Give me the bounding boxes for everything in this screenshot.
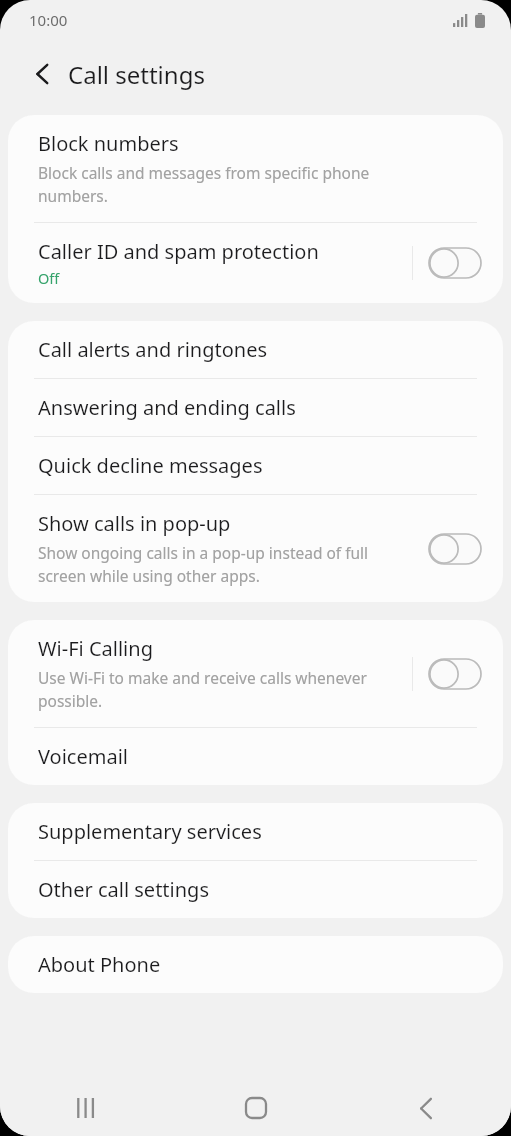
staticText: Answering and ending calls — [38, 394, 296, 421]
staticText: Use Wi-Fi to make and receive calls when… — [38, 667, 367, 712]
button[interactable]: Show calls in pop-up — [8, 495, 503, 602]
staticText: Quick decline messages — [38, 452, 263, 479]
staticText: Off — [38, 268, 60, 288]
button[interactable]: Quick decline messages — [8, 437, 503, 494]
staticText: Wi-Fi Calling — [38, 635, 153, 662]
staticText: Show calls in pop-up — [38, 510, 231, 537]
button[interactable]: Home — [171, 1080, 341, 1136]
staticText: Caller ID and spam protection — [38, 238, 319, 265]
staticText: Other call settings — [38, 876, 209, 903]
staticText: Supplementary services — [38, 818, 262, 845]
button[interactable]: Call alerts and ringtones — [8, 321, 503, 378]
staticText: Block calls and messages from specific p… — [38, 162, 370, 207]
button[interactable]: About Phone — [8, 936, 503, 993]
button[interactable]: Block numbers — [8, 115, 503, 222]
staticText: Block numbers — [38, 130, 179, 157]
button[interactable]: Wi-Fi Calling — [8, 620, 503, 727]
button[interactable]: Navigate up — [24, 56, 60, 92]
staticText: About Phone — [38, 951, 161, 978]
button[interactable]: Other call settings — [8, 861, 503, 918]
button[interactable]: Answering and ending calls — [8, 379, 503, 436]
button[interactable]: Toggle setting — [429, 248, 481, 278]
staticText: Call alerts and ringtones — [38, 336, 267, 363]
button[interactable]: Voicemail — [8, 728, 503, 785]
staticText: Voicemail — [38, 743, 128, 770]
button[interactable]: Supplementary services — [8, 803, 503, 860]
button[interactable]: Caller ID and spam protection — [8, 223, 503, 303]
staticText: Show ongoing calls in a pop-up instead o… — [38, 542, 369, 587]
button[interactable]: Recent apps — [0, 1080, 171, 1136]
button[interactable]: Toggle setting — [429, 534, 481, 564]
staticText: 10:00 — [29, 10, 68, 30]
button[interactable]: Back — [341, 1080, 511, 1136]
staticText: Call settings — [68, 58, 205, 91]
button[interactable]: Toggle setting — [429, 659, 481, 689]
